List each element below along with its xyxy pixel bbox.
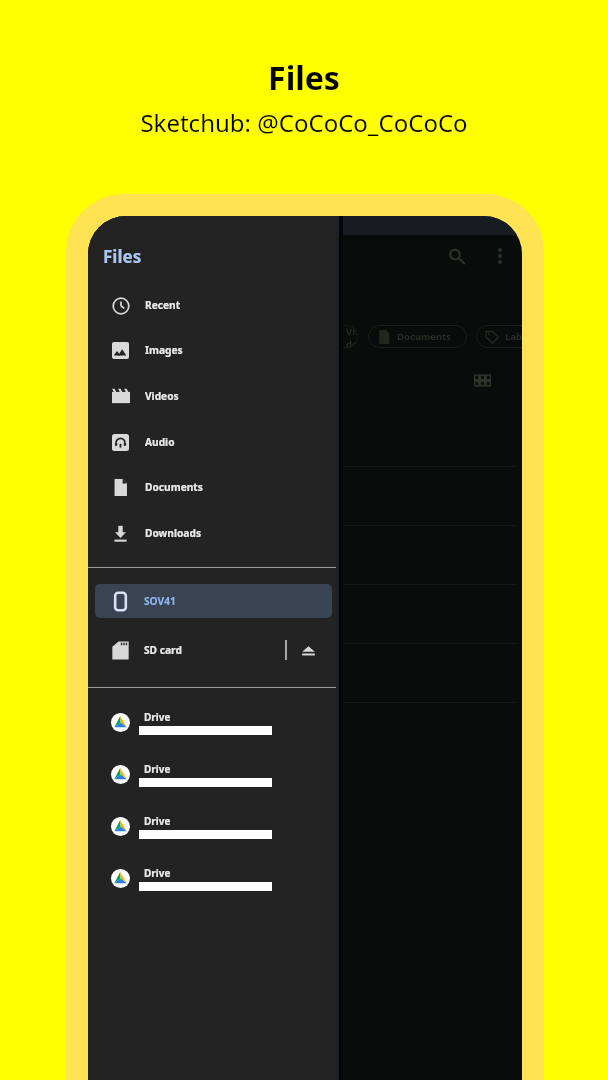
staticText: Drive <box>144 762 171 776</box>
button[interactable]: Drive <box>88 751 336 797</box>
button[interactable]: SD card <box>88 628 336 672</box>
staticText: SOV41 <box>144 594 176 608</box>
button[interactable]: Recent <box>88 283 336 327</box>
staticText: Downloads <box>145 526 202 540</box>
staticText: Recent <box>145 298 181 312</box>
button[interactable]: SOV41 <box>95 584 332 618</box>
button[interactable]: More options <box>482 238 518 274</box>
staticText: Files <box>268 56 340 100</box>
staticText: Drive <box>144 710 171 724</box>
button[interactable]: Search <box>440 241 474 275</box>
button[interactable]: Documents <box>88 465 336 509</box>
staticText: Videos <box>145 389 179 403</box>
staticText: Images <box>145 343 183 357</box>
button[interactable]: Videos <box>88 374 336 418</box>
staticText: Drive <box>144 866 171 880</box>
button[interactable]: Eject SD card <box>296 638 320 662</box>
staticText: Documents <box>397 330 451 343</box>
button[interactable]: Drive <box>88 855 336 901</box>
button[interactable]: Documents <box>368 325 467 348</box>
staticText: Files <box>103 245 142 268</box>
button[interactable]: Drive <box>88 803 336 849</box>
staticText: Sketchub: @CoCoCo_CoCoCo <box>140 106 468 139</box>
button[interactable]: Images <box>88 328 336 372</box>
button[interactable]: Audio <box>88 420 336 464</box>
staticText: Documents <box>145 480 203 494</box>
staticText: Labels <box>505 330 522 343</box>
staticText: Drive <box>144 814 171 828</box>
staticText: SD card <box>144 643 182 657</box>
button[interactable]: Grid view <box>466 364 498 396</box>
button[interactable]: Labels <box>476 325 522 348</box>
button[interactable]: Videos <box>284 325 358 348</box>
staticText: Audio <box>145 435 175 449</box>
button[interactable]: Drive <box>88 699 336 745</box>
staticText: Videos <box>346 325 358 348</box>
button[interactable]: Downloads <box>88 511 336 555</box>
